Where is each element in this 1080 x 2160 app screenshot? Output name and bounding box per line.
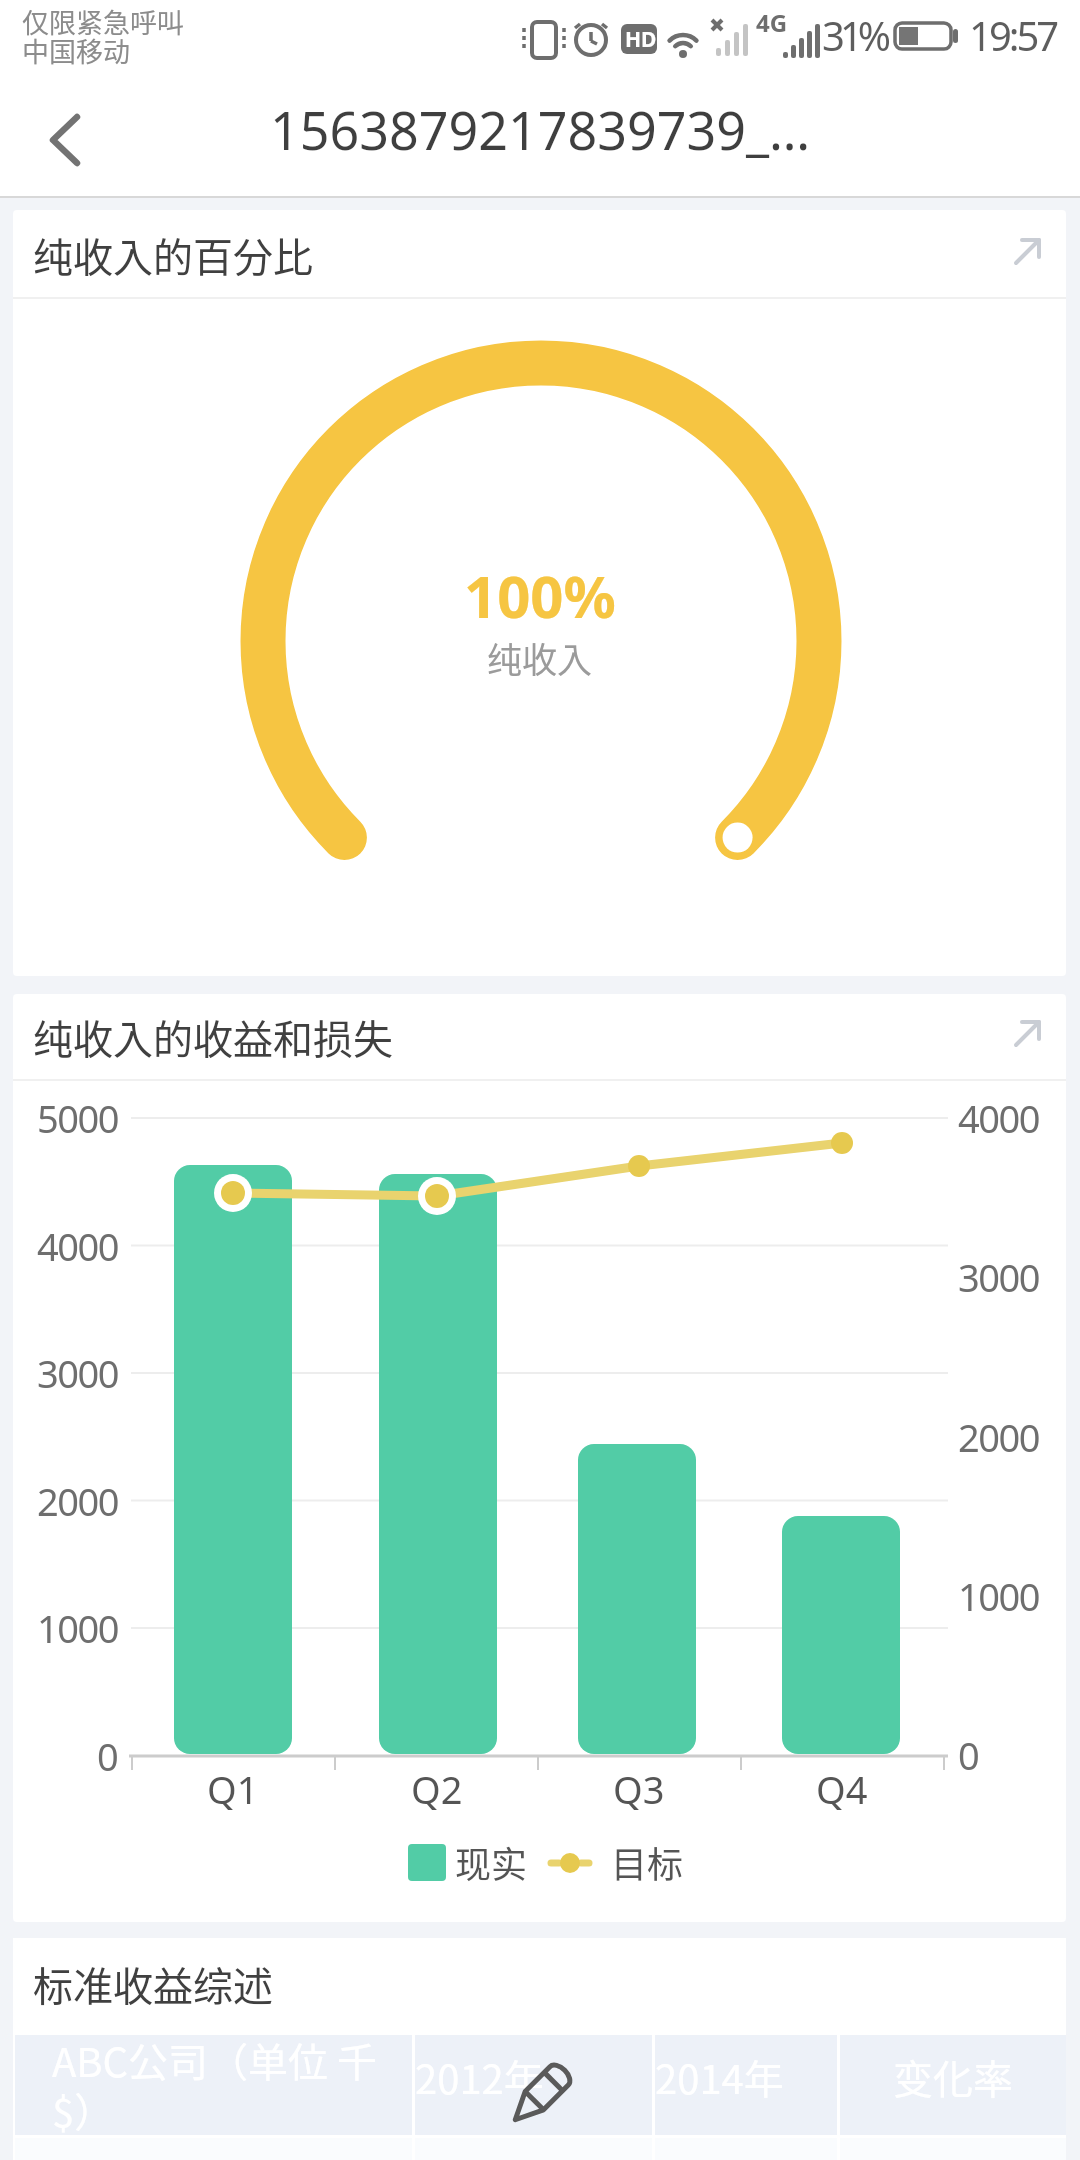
staticText: HD bbox=[625, 25, 657, 54]
button[interactable] bbox=[998, 221, 1058, 281]
staticText: 100% bbox=[464, 556, 616, 635]
staticText: 纯收入的收益和损失 bbox=[33, 1008, 393, 1066]
staticText: 变化率 bbox=[893, 2048, 1013, 2106]
staticText: 2000 bbox=[37, 1475, 118, 1527]
staticText: 4000 bbox=[37, 1220, 118, 1272]
staticText: 19:57 bbox=[969, 8, 1053, 62]
staticText: 0 bbox=[97, 1730, 118, 1782]
staticText: 4000 bbox=[958, 1092, 1039, 1144]
button[interactable] bbox=[998, 1003, 1058, 1063]
staticText: 现实 bbox=[455, 1836, 528, 1888]
staticText: Q4 bbox=[816, 1763, 868, 1815]
staticText: $） bbox=[52, 2081, 115, 2139]
staticText: 4G bbox=[756, 6, 788, 39]
staticText: 2000 bbox=[958, 1411, 1039, 1463]
staticText: 3000 bbox=[958, 1251, 1039, 1303]
staticText: Q1 bbox=[207, 1763, 259, 1815]
staticText: 1000 bbox=[958, 1570, 1039, 1622]
staticText: 目标 bbox=[611, 1836, 684, 1888]
staticText: 1563879217839739_… bbox=[270, 94, 811, 165]
staticText: ABC公司（单位 千 bbox=[52, 2031, 378, 2089]
staticText: 仅限紧急呼叫 bbox=[22, 2, 184, 41]
staticText: 2012年 bbox=[415, 2048, 544, 2106]
staticText: 3000 bbox=[37, 1347, 118, 1399]
staticText: 5000 bbox=[37, 1092, 118, 1144]
staticText: 31% bbox=[822, 8, 886, 62]
staticText: 标准收益综述 bbox=[33, 1955, 273, 2013]
staticText: 纯收入 bbox=[487, 632, 593, 683]
staticText: 中国移动 bbox=[22, 31, 130, 70]
button[interactable] bbox=[30, 100, 100, 170]
staticText: 纯收入的百分比 bbox=[33, 226, 313, 284]
staticText: 0 bbox=[958, 1729, 979, 1781]
staticText: Q3 bbox=[613, 1763, 665, 1815]
staticText: 2014年 bbox=[655, 2048, 784, 2106]
button[interactable] bbox=[480, 2035, 600, 2155]
staticText: 1000 bbox=[37, 1602, 118, 1654]
button[interactable] bbox=[538, 1829, 688, 1899]
button[interactable] bbox=[393, 1829, 553, 1899]
staticText: Q2 bbox=[411, 1763, 463, 1815]
